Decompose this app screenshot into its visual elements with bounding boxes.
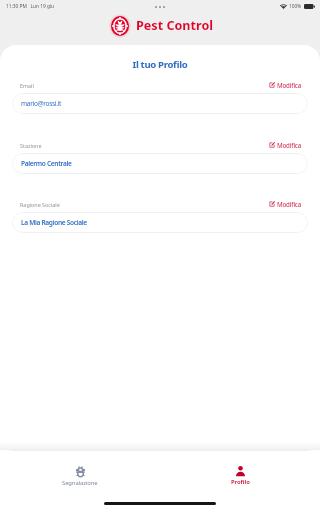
button[interactable]: La Mia Ragione Sociale [12, 212, 308, 233]
staticText: Email [20, 82, 34, 89]
staticText: mario@rossi.it [21, 99, 62, 108]
button[interactable]: mario@rossi.it [12, 93, 308, 114]
staticText: La Mia Ragione Sociale [21, 218, 87, 227]
staticText: Pest Control [136, 17, 214, 34]
staticText: Palermo Centrale [21, 159, 72, 168]
staticText: Ragione Sociale [20, 201, 60, 208]
staticText: Il tuo Profilo [0, 58, 320, 71]
button[interactable]: Modifica [268, 199, 303, 209]
other: Profilo [236, 466, 245, 477]
button[interactable]: Profilo [160, 466, 320, 486]
staticText: 100% [289, 3, 302, 10]
button[interactable]: Segnalazione [0, 466, 160, 487]
button[interactable]: Modifica [268, 80, 303, 90]
button[interactable]: Modifica [268, 140, 303, 150]
staticText: 11:30 PM Lun 19 giu [6, 3, 55, 10]
staticText: Modifica [277, 200, 302, 208]
staticText: Modifica [277, 141, 302, 149]
staticText: Modifica [277, 81, 302, 89]
staticText: Stazione [20, 142, 42, 149]
staticText: Profilo [231, 478, 250, 486]
other: Segnalazione [76, 466, 85, 478]
staticText: Segnalazione [62, 479, 98, 487]
button[interactable]: Palermo Centrale [12, 153, 308, 174]
